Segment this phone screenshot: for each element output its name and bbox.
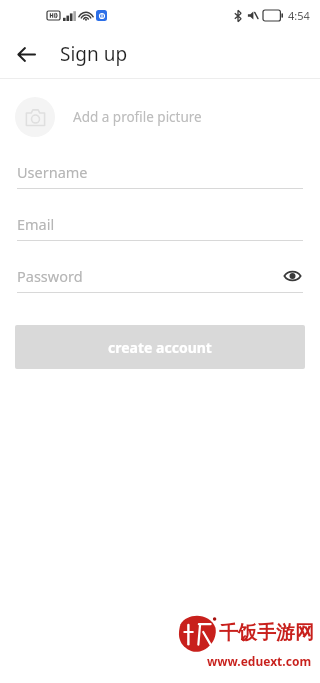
staticText: Username: [17, 162, 88, 182]
staticText: Email: [17, 214, 55, 234]
staticText: Add a profile picture: [73, 108, 202, 126]
staticText: 千饭手游网: [219, 621, 314, 645]
staticText: www.eduext.com: [207, 653, 312, 669]
button[interactable]: Show password: [281, 265, 303, 287]
staticText: Password: [17, 266, 83, 286]
staticText: 4:54: [288, 8, 310, 23]
button[interactable]: Email: [17, 213, 303, 241]
button[interactable]: create account: [15, 325, 305, 369]
staticText: create account: [108, 338, 212, 357]
staticText: Sign up: [60, 41, 128, 67]
button[interactable]: Username: [17, 161, 303, 189]
button[interactable]: Back: [8, 36, 44, 72]
button[interactable]: Password: [17, 265, 303, 293]
button[interactable]: Add a profile picture: [15, 97, 305, 137]
